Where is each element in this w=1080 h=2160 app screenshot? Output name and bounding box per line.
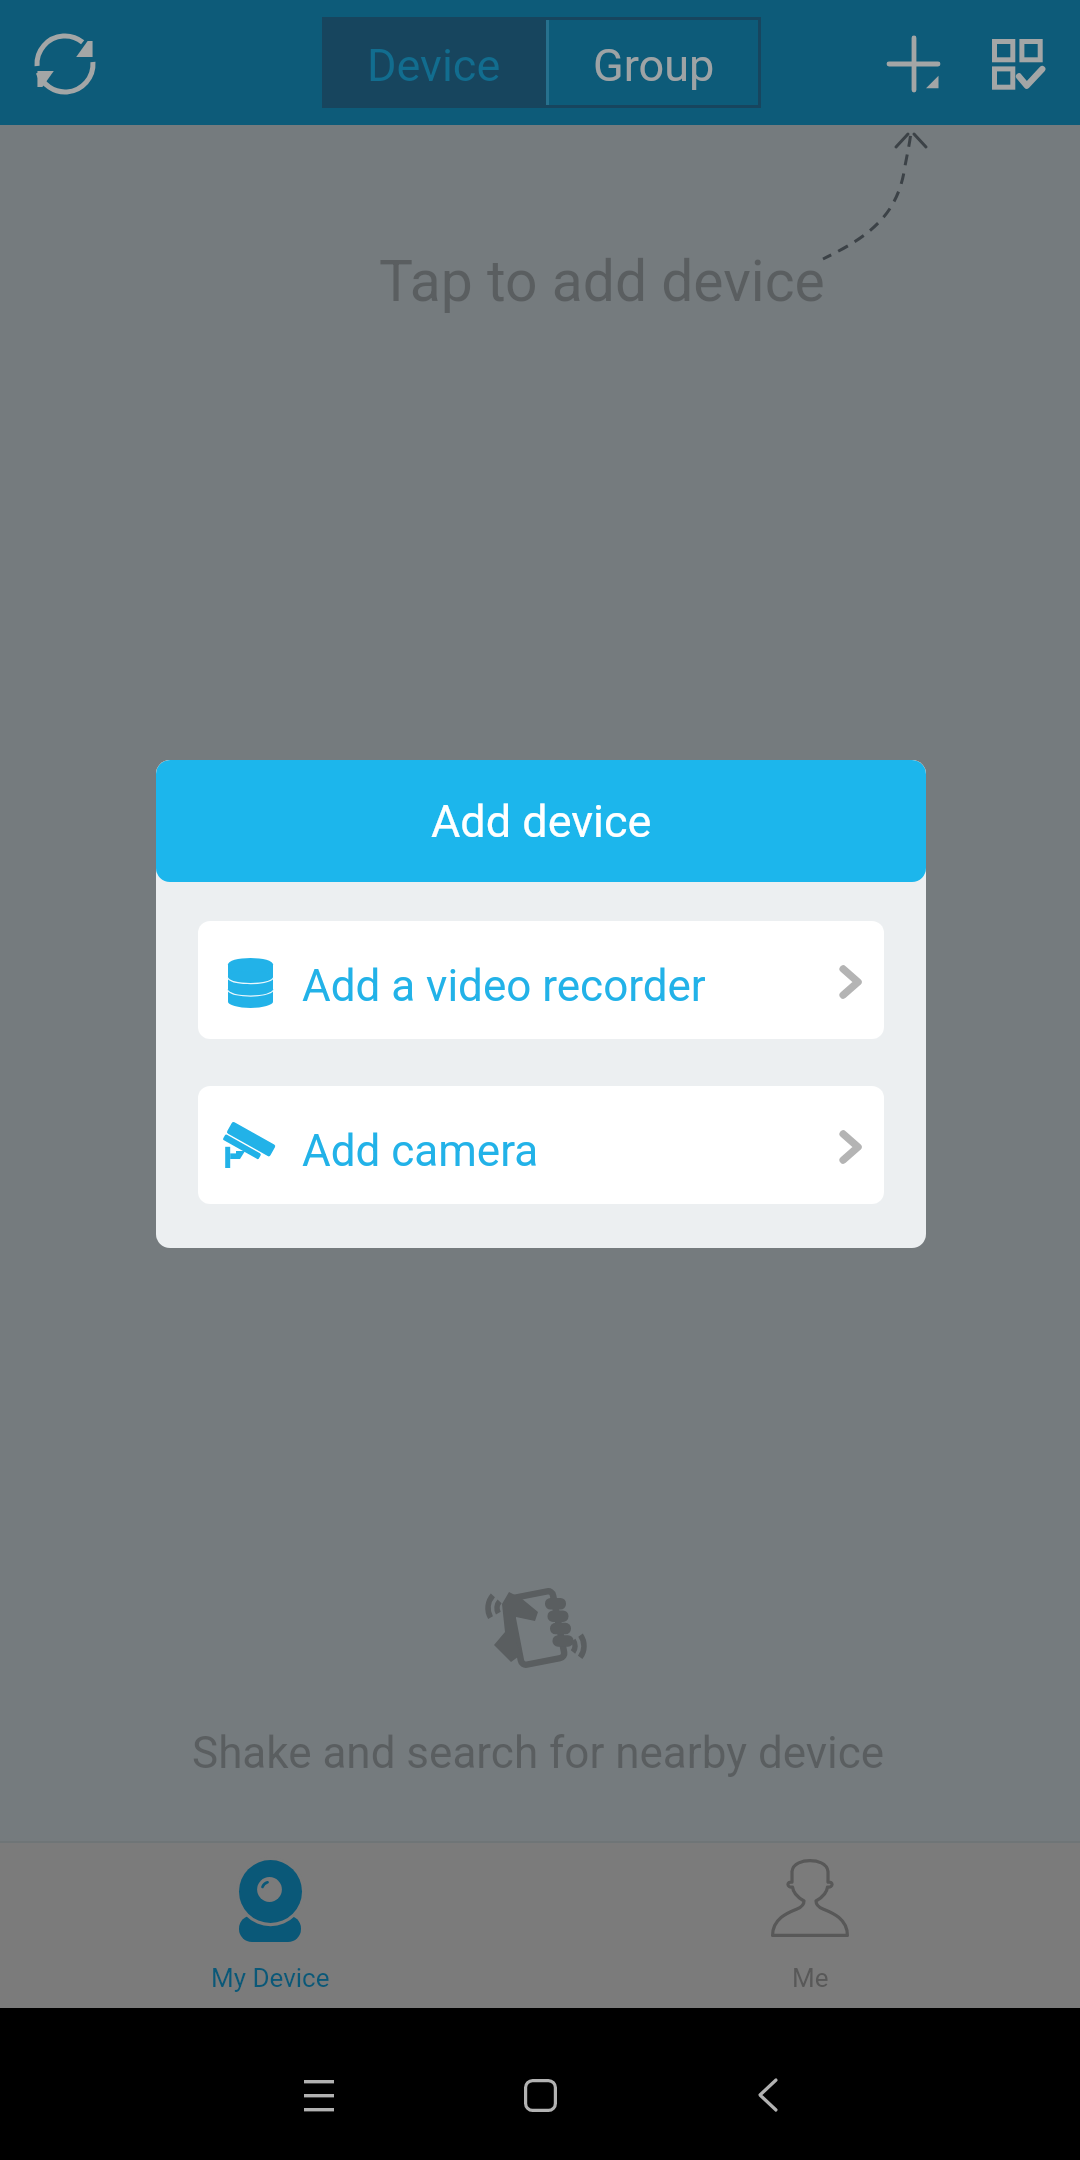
staticText: Tap to add device: [379, 248, 825, 315]
staticText: Add device: [431, 795, 652, 848]
button[interactable]: Device: [322, 17, 546, 108]
button[interactable]: Add a video recorder: [198, 921, 884, 1039]
button[interactable]: Recent apps: [271, 2054, 367, 2134]
staticText: Me: [792, 1963, 829, 1993]
staticText: Group: [593, 39, 715, 92]
staticText: Shake and search for nearby device: [192, 1727, 885, 1779]
staticText: Device: [367, 39, 501, 92]
button[interactable]: Back: [720, 2053, 816, 2137]
button[interactable]: Add device: [864, 14, 964, 114]
button[interactable]: Home: [492, 2053, 588, 2137]
staticText: My Device: [211, 1963, 330, 1993]
button[interactable]: Me: [540, 1841, 1080, 2008]
button[interactable]: Batch select devices: [967, 14, 1067, 114]
button[interactable]: Group: [546, 17, 761, 108]
staticText: Add a video recorder: [302, 960, 706, 1012]
button[interactable]: Refresh: [25, 24, 105, 104]
button[interactable]: Add camera: [198, 1086, 884, 1204]
staticText: Add camera: [302, 1125, 539, 1177]
button[interactable]: My Device: [0, 1841, 540, 2008]
